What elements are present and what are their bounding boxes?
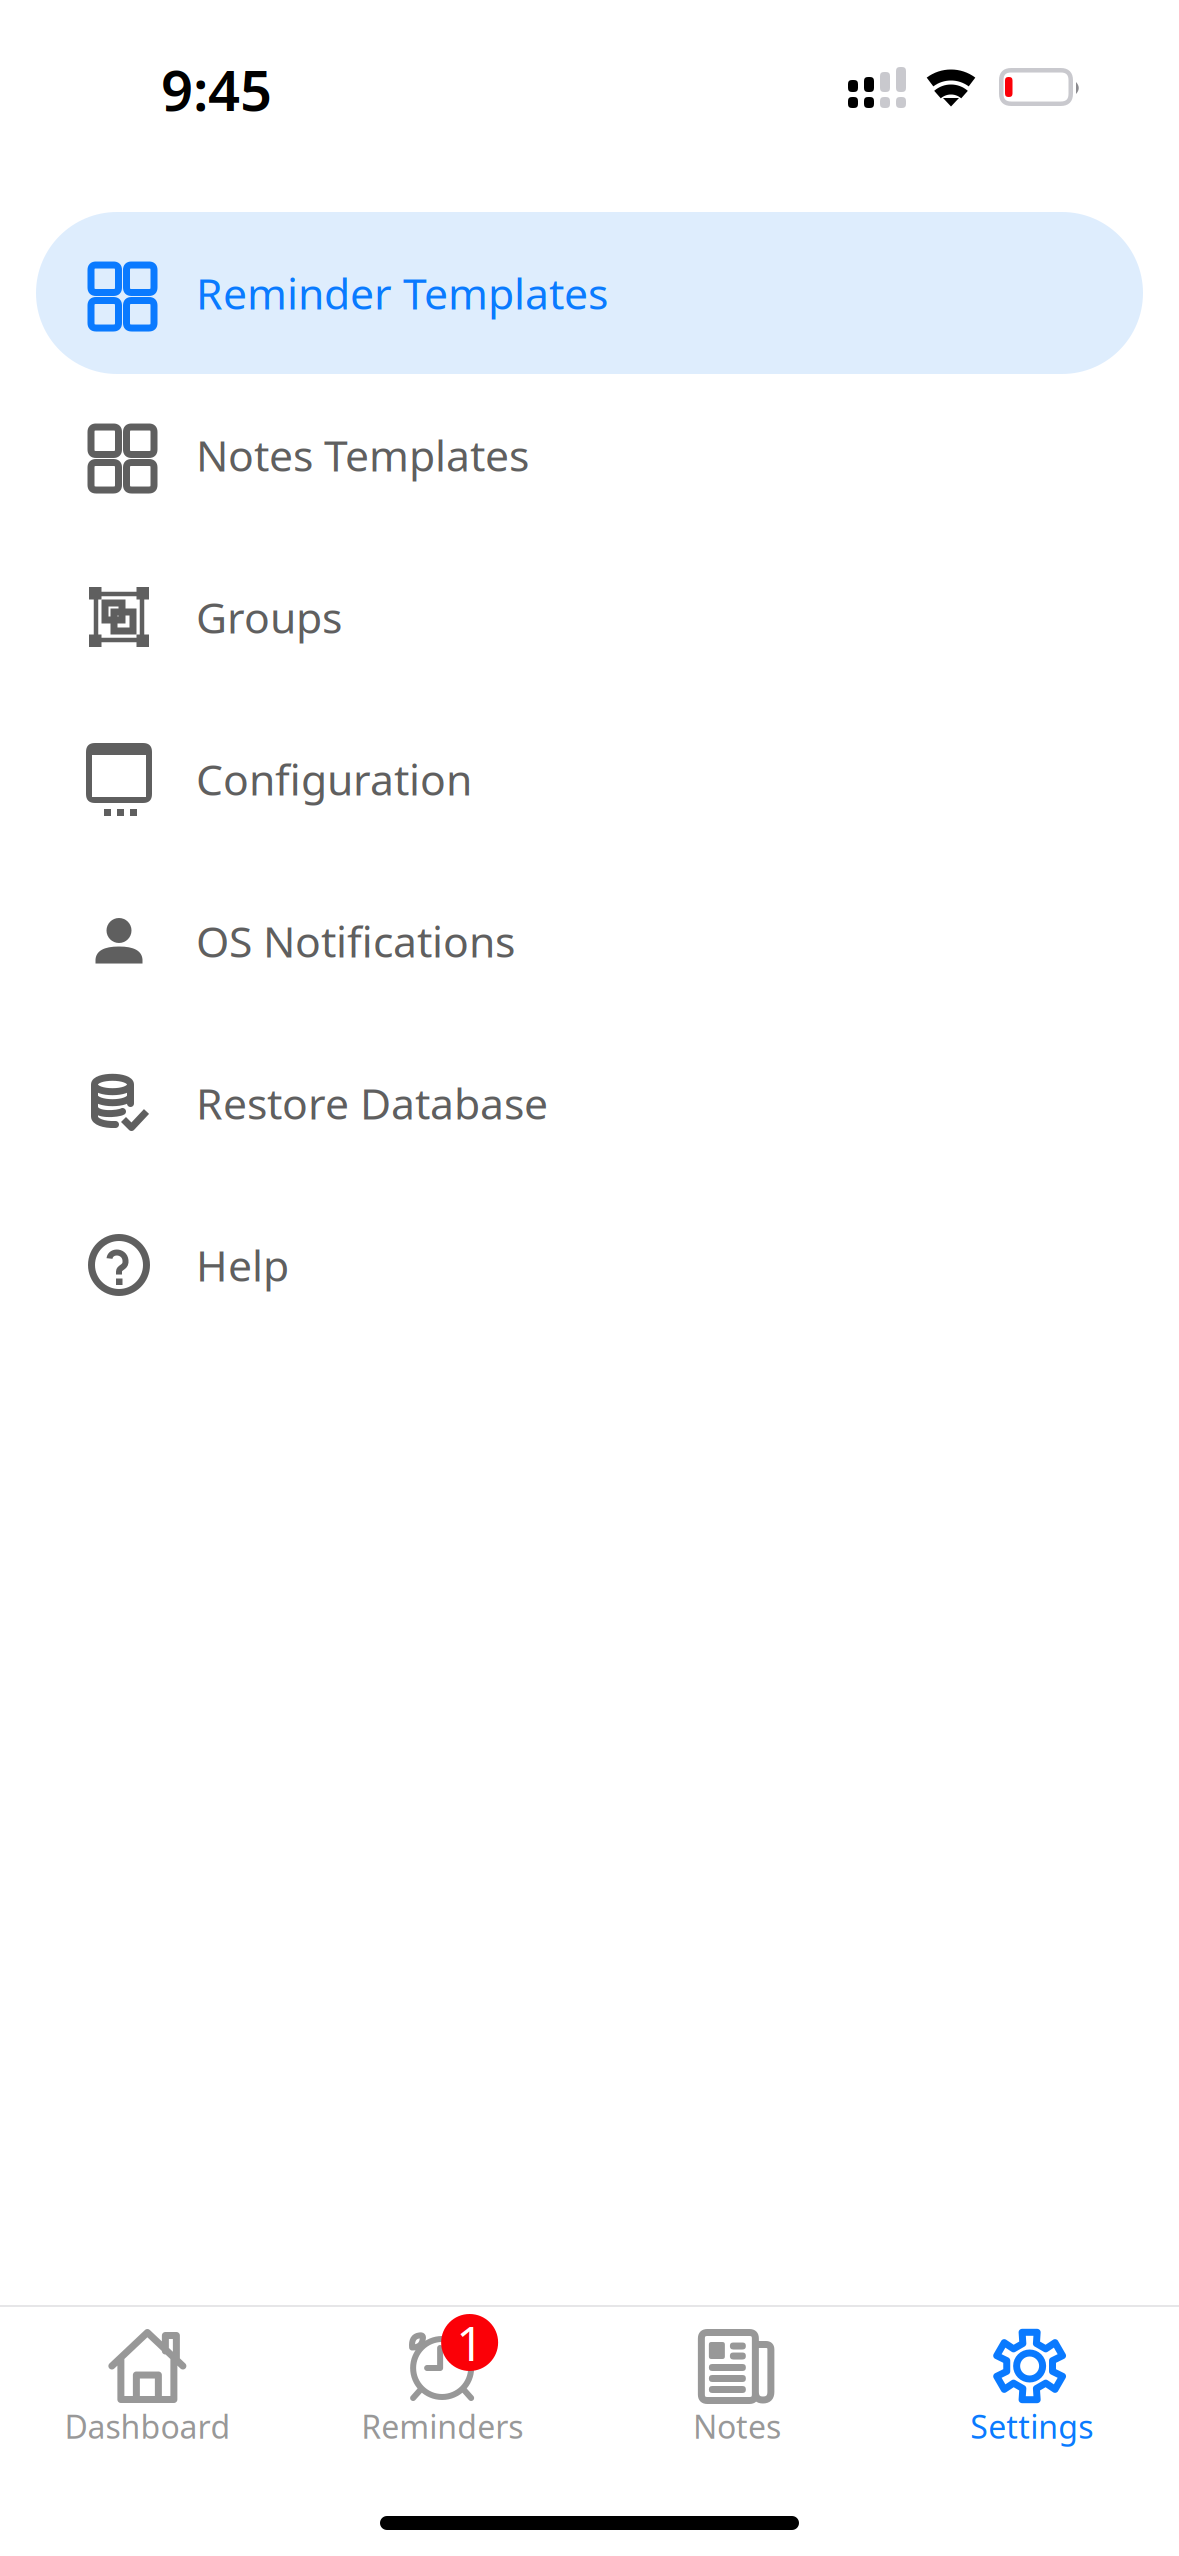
staticText: 1 [456, 2311, 483, 2374]
staticText: Dashboard [64, 2405, 230, 2447]
button[interactable]: Configuration [0, 698, 1179, 860]
staticText: Configuration [196, 751, 472, 807]
button[interactable]: Notes [589, 2328, 884, 2447]
staticText: Groups [196, 589, 342, 645]
staticText: Settings [970, 2405, 1093, 2447]
button[interactable]: Notes Templates [0, 374, 1179, 536]
button[interactable]: Help [0, 1184, 1179, 1346]
button[interactable]: Reminder Templates [0, 212, 1179, 374]
button[interactable]: Groups [0, 536, 1179, 698]
staticText: Reminders [361, 2405, 523, 2447]
button[interactable]: Dashboard [0, 2328, 295, 2447]
staticText: Restore Database [196, 1075, 548, 1131]
button[interactable]: Settings [884, 2328, 1179, 2447]
staticText: Reminder Templates [196, 265, 608, 321]
staticText: Help [196, 1237, 289, 1293]
button[interactable]: OS Notifications [0, 860, 1179, 1022]
button[interactable]: 1 [295, 2328, 590, 2447]
staticText: Notes Templates [196, 427, 529, 483]
staticText: Notes [693, 2405, 781, 2447]
staticText: OS Notifications [196, 913, 515, 969]
button[interactable]: Restore Database [0, 1022, 1179, 1184]
staticText: 9:45 [161, 52, 272, 126]
